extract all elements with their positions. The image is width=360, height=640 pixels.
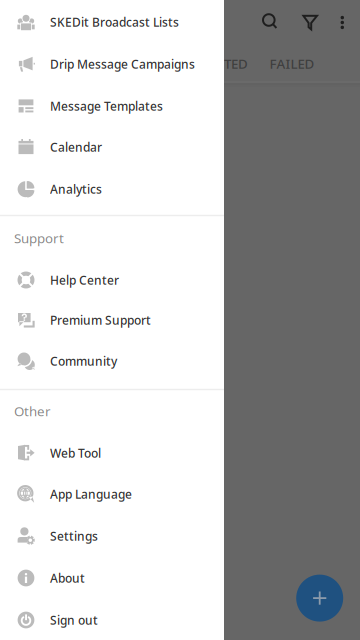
staticText: App Language	[50, 486, 132, 502]
staticText: Analytics	[50, 181, 102, 197]
button[interactable]: Filter	[291, 4, 329, 42]
button[interactable]: Calendar	[0, 126, 224, 168]
staticText: FAILED	[269, 55, 314, 72]
button[interactable]: FAILED	[254, 41, 330, 85]
staticText: SKEDit Broadcast Lists	[50, 14, 179, 30]
button[interactable]: SKEDit Broadcast Lists	[0, 0, 224, 43]
button[interactable]: Help Center	[0, 259, 224, 300]
staticText: Drip Message Campaigns	[50, 56, 195, 72]
button[interactable]: Premium Support	[0, 300, 224, 340]
button[interactable]: Add	[296, 575, 343, 622]
button[interactable]: Community	[0, 340, 224, 382]
staticText: Calendar	[50, 139, 102, 155]
staticText: Message Templates	[50, 98, 163, 114]
button[interactable]: Web Tool	[0, 432, 224, 473]
staticText: Community	[50, 353, 117, 369]
button[interactable]: About	[0, 557, 224, 599]
button[interactable]: Message Templates	[0, 85, 224, 126]
button[interactable]: App Language	[0, 473, 224, 515]
staticText: Other	[14, 402, 51, 420]
staticText: Settings	[50, 528, 98, 544]
staticText: TED	[224, 55, 248, 72]
staticText: About	[50, 570, 85, 586]
button[interactable]: Analytics	[0, 168, 224, 208]
staticText: Support	[14, 229, 64, 247]
button[interactable]: Drip Message Campaigns	[0, 43, 224, 85]
button[interactable]: Sign out	[0, 599, 224, 640]
button[interactable]: TED	[224, 41, 268, 85]
staticText: Help Center	[50, 272, 119, 288]
staticText: Web Tool	[50, 445, 101, 461]
button[interactable]: Search	[252, 4, 290, 42]
button[interactable]: More options	[324, 4, 360, 40]
button[interactable]: Settings	[0, 515, 224, 557]
staticText: Sign out	[50, 612, 98, 628]
staticText: Premium Support	[50, 312, 151, 328]
